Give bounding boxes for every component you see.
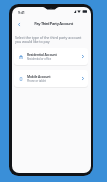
button[interactable]: Residential Account: [14, 48, 88, 65]
button[interactable]: Mobile Account: [14, 70, 88, 87]
staticText: Residential Account: [27, 52, 57, 56]
staticText: Select the type of the third party accou…: [15, 35, 85, 44]
staticText: 9:41: [18, 10, 25, 15]
staticText: Pay Third Party Account: [34, 21, 73, 26]
staticText: Phone or tablet: [27, 79, 46, 83]
button[interactable]: Back: [14, 20, 23, 29]
staticText: Mobile Account: [27, 74, 51, 78]
staticText: Residential or office: [27, 57, 52, 61]
